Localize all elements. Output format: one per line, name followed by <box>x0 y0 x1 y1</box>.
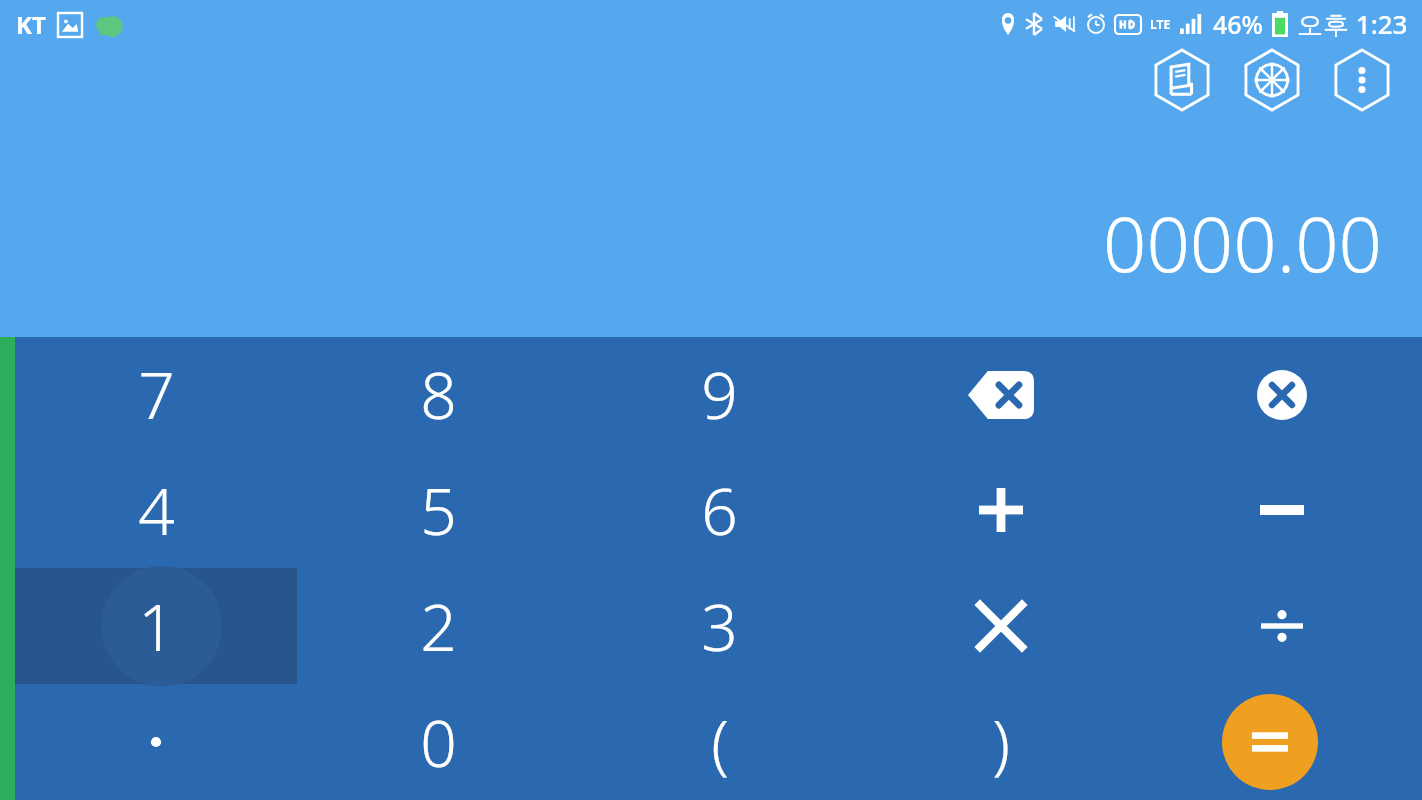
button[interactable]: Settings wheel <box>1240 48 1304 112</box>
button[interactable]: 4 <box>15 452 297 568</box>
button[interactable]: Book <box>1150 48 1214 112</box>
button[interactable]: 0 <box>297 684 579 800</box>
staticText: 2 <box>420 583 457 670</box>
staticText: 4 <box>138 467 175 554</box>
staticText: 9 <box>701 351 738 438</box>
button[interactable]: 6 <box>579 452 860 568</box>
button[interactable]: 7 <box>15 337 297 452</box>
button[interactable]: 8 <box>297 337 579 452</box>
staticText: 5 <box>420 467 457 554</box>
button[interactable]: ( <box>579 684 860 800</box>
button[interactable]: 2 <box>297 568 579 684</box>
staticText: 8 <box>420 351 457 438</box>
button[interactable]: 5 <box>297 452 579 568</box>
staticText: 7 <box>138 351 175 438</box>
staticText: 0000.00 <box>1103 191 1382 295</box>
button[interactable] <box>15 684 297 800</box>
button[interactable]: Clear <box>1141 337 1422 452</box>
staticText: 6 <box>701 467 738 554</box>
button[interactable]: Backspace <box>860 337 1141 452</box>
staticText: 0 <box>420 699 457 786</box>
button[interactable]: Minus <box>1141 452 1422 568</box>
button[interactable]: 9 <box>579 337 860 452</box>
button[interactable]: Plus <box>860 452 1141 568</box>
staticText: ) <box>992 699 1010 786</box>
button[interactable]: Multiply <box>860 568 1141 684</box>
button[interactable]: Equals <box>1222 694 1318 790</box>
staticText: 오후 1:23 <box>1297 6 1408 42</box>
button[interactable]: 3 <box>579 568 860 684</box>
staticText: 3 <box>701 583 738 670</box>
staticText: ( <box>711 699 729 786</box>
staticText: LTE <box>1150 16 1171 32</box>
button[interactable]: More options <box>1330 48 1394 112</box>
staticText: 1 <box>138 583 175 670</box>
button[interactable]: Divide <box>1141 568 1422 684</box>
staticText: KT <box>16 8 46 41</box>
button[interactable]: 1 <box>15 568 297 684</box>
staticText: 46% <box>1213 7 1263 41</box>
button[interactable]: ) <box>860 684 1141 800</box>
